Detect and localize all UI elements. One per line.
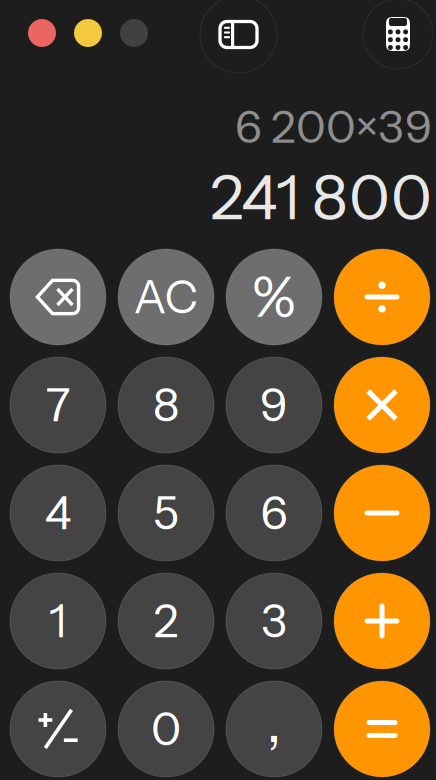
button[interactable]: Minimize <box>74 19 102 47</box>
staticText: 8 <box>153 377 179 433</box>
button[interactable]: 8 <box>118 357 214 453</box>
staticText: 5 <box>153 485 179 541</box>
button[interactable]: Subtract <box>334 465 430 561</box>
button[interactable]: Close <box>28 19 56 47</box>
staticText: 7 <box>46 377 70 433</box>
button[interactable]: Equals <box>334 681 430 777</box>
button[interactable]: 9 <box>226 357 322 453</box>
button[interactable]: Zoom <box>120 19 148 47</box>
button[interactable]: 5 <box>118 465 214 561</box>
button[interactable]: % <box>226 249 322 345</box>
button[interactable]: 2 <box>118 573 214 669</box>
staticText: , <box>266 685 281 757</box>
staticText: 3 <box>261 593 287 649</box>
staticText: 241 800 <box>210 160 432 235</box>
staticText: 6 200×39 <box>235 99 432 154</box>
button[interactable]: 4 <box>10 465 106 561</box>
button[interactable]: 1 <box>10 573 106 669</box>
button[interactable]: Toggle Sidebar <box>200 0 277 73</box>
button[interactable]: Divide <box>334 249 430 345</box>
staticText: 6 <box>260 485 287 541</box>
button[interactable]: Delete <box>10 249 106 345</box>
staticText: 4 <box>44 485 71 541</box>
button[interactable]: Add <box>334 573 430 669</box>
staticText: 9 <box>260 377 288 433</box>
button[interactable]: 7 <box>10 357 106 453</box>
staticText: % <box>252 264 295 330</box>
button[interactable]: 0 <box>118 681 214 777</box>
button[interactable]: Multiply <box>334 357 430 453</box>
button[interactable]: Calculator Mode <box>363 0 433 69</box>
staticText: 2 <box>153 593 178 649</box>
staticText: 1 <box>49 593 67 649</box>
staticText: 0 <box>151 701 181 757</box>
button[interactable]: AC <box>118 249 214 345</box>
staticText: AC <box>133 269 198 325</box>
button[interactable]: 3 <box>226 573 322 669</box>
button[interactable]: 6 <box>226 465 322 561</box>
button[interactable]: Toggle Sign <box>10 681 106 777</box>
button[interactable]: , <box>226 681 322 777</box>
